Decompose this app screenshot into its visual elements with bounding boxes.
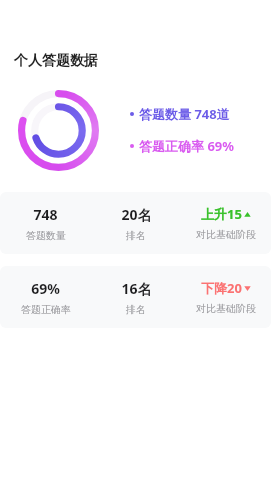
staticText: 答题正确率 xyxy=(21,303,71,316)
staticText: 16名 xyxy=(121,279,152,298)
other: 答题数据环形图 xyxy=(18,90,99,171)
staticText: 20名 xyxy=(121,205,152,224)
staticText: 排名 xyxy=(126,229,146,242)
staticText: 69% xyxy=(31,279,60,298)
staticText: 748 xyxy=(33,205,58,224)
staticText: 下降20 xyxy=(201,279,242,297)
staticText: 答题数量 xyxy=(26,229,66,242)
button[interactable]: 答题正确率 69% xyxy=(130,137,234,155)
staticText: 对比基础阶段 xyxy=(196,228,256,241)
staticText: 个人答题数据 xyxy=(14,52,98,70)
button[interactable]: 69% xyxy=(0,266,271,328)
staticText: 上升15 xyxy=(201,205,242,223)
staticText: 排名 xyxy=(126,303,146,316)
staticText: 对比基础阶段 xyxy=(196,302,256,315)
button[interactable]: 748 xyxy=(0,192,271,254)
button[interactable]: 答题数量 748道 xyxy=(130,105,230,123)
staticText: 答题正确率 69% xyxy=(139,137,234,155)
staticText: 答题数量 748道 xyxy=(139,105,230,123)
